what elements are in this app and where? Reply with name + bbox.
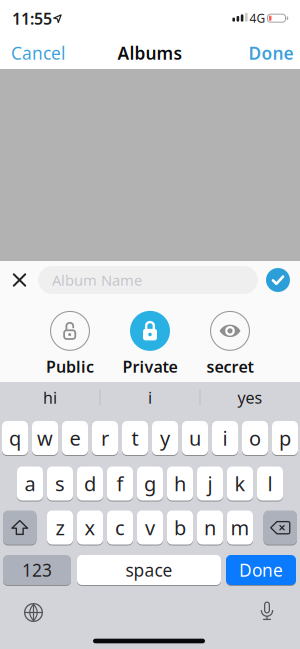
staticText: hi — [43, 387, 57, 408]
button[interactable]: h — [167, 466, 193, 500]
button[interactable]: space — [77, 555, 221, 585]
staticText: l — [267, 470, 272, 497]
staticText: h — [174, 470, 186, 497]
button[interactable]: Cancel — [11, 41, 65, 64]
staticText: Private — [122, 356, 177, 377]
staticText: a — [24, 470, 35, 497]
staticText: yes — [237, 387, 262, 408]
staticText: g — [144, 470, 156, 497]
staticText: k — [234, 470, 245, 497]
button[interactable]: t — [122, 421, 148, 455]
staticText: Done — [239, 558, 283, 581]
staticText: y — [160, 425, 170, 451]
button[interactable]: z — [47, 510, 73, 544]
staticText: Album Name — [52, 270, 142, 290]
staticText: f — [116, 470, 123, 497]
staticText: secret — [206, 356, 253, 377]
staticText: Done — [248, 41, 293, 64]
button[interactable]: n — [197, 510, 223, 544]
button[interactable]: Private — [122, 311, 177, 377]
button[interactable]: u — [182, 421, 208, 455]
button[interactable]: r — [92, 421, 118, 455]
button[interactable]: f — [107, 466, 133, 500]
staticText: j — [207, 470, 212, 497]
staticText: e — [69, 425, 80, 451]
staticText: 4G — [249, 10, 265, 26]
button[interactable]: Done — [226, 555, 296, 585]
button[interactable]: i — [212, 421, 238, 455]
button[interactable]: Shift — [3, 510, 36, 544]
staticText: z — [55, 514, 64, 541]
staticText: r — [101, 425, 109, 451]
button[interactable]: Delete — [263, 510, 297, 544]
button[interactable]: j — [197, 466, 223, 500]
staticText: i — [148, 387, 152, 408]
button[interactable]: s — [47, 466, 73, 500]
staticText: t — [131, 425, 138, 451]
button[interactable]: c — [107, 510, 133, 544]
button[interactable]: Done — [248, 41, 293, 64]
button[interactable]: k — [227, 466, 253, 500]
button[interactable]: v — [137, 510, 163, 544]
button[interactable]: i — [101, 382, 199, 412]
button[interactable]: a — [17, 466, 43, 500]
staticText: c — [115, 514, 125, 541]
staticText: q — [9, 425, 21, 451]
staticText: w — [37, 425, 53, 451]
button[interactable]: Next keyboard — [24, 603, 43, 622]
button[interactable]: d — [77, 466, 103, 500]
staticText: o — [249, 425, 261, 451]
button[interactable]: Public — [46, 311, 94, 377]
button[interactable]: y — [152, 421, 178, 455]
staticText: b — [174, 514, 186, 541]
button[interactable]: x — [77, 510, 103, 544]
button[interactable]: Album Name — [38, 266, 258, 294]
staticText: Public — [46, 356, 94, 377]
button[interactable]: q — [2, 421, 28, 455]
button[interactable]: w — [32, 421, 58, 455]
button[interactable]: b — [167, 510, 193, 544]
staticText: x — [84, 514, 95, 541]
button[interactable]: l — [257, 466, 283, 500]
button[interactable]: secret — [206, 311, 253, 377]
button[interactable]: Dictation — [260, 601, 274, 621]
staticText: i — [222, 425, 227, 451]
staticText: 123 — [22, 558, 52, 581]
staticText: v — [145, 514, 155, 541]
button[interactable]: Confirm — [266, 268, 290, 292]
staticText: 11:55 — [12, 8, 52, 29]
button[interactable]: g — [137, 466, 163, 500]
staticText: n — [204, 514, 216, 541]
button[interactable]: m — [227, 510, 253, 544]
staticText: space — [125, 558, 172, 581]
staticText: p — [279, 425, 291, 451]
staticText: Cancel — [11, 41, 65, 64]
button[interactable]: Close — [12, 272, 27, 287]
staticText: u — [189, 425, 201, 451]
button[interactable]: 123 — [3, 555, 71, 585]
staticText: d — [84, 470, 96, 497]
button[interactable]: e — [62, 421, 88, 455]
staticText: m — [230, 514, 249, 541]
button[interactable]: p — [272, 421, 298, 455]
button[interactable]: hi — [1, 382, 99, 412]
button[interactable]: o — [242, 421, 268, 455]
button[interactable]: yes — [201, 382, 299, 412]
staticText: s — [55, 470, 65, 497]
staticText: Albums — [117, 41, 182, 64]
